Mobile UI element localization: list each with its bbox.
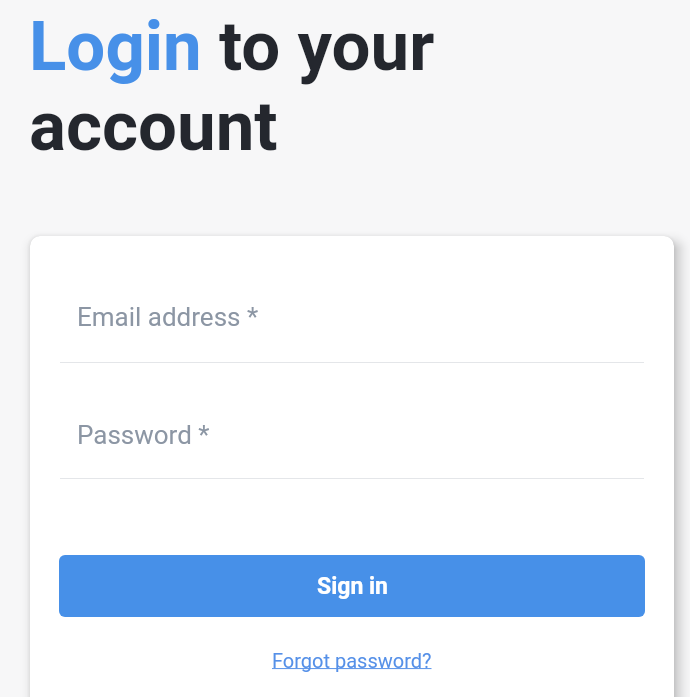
button[interactable]: Forgot password?: [266, 645, 438, 676]
staticText: Email address *: [77, 302, 259, 332]
button[interactable]: Sign in: [59, 555, 645, 617]
staticText: Sign in: [317, 573, 388, 600]
staticText: Forgot password?: [272, 649, 432, 672]
button[interactable]: Email address *: [60, 296, 644, 363]
staticText: Login to your account: [29, 6, 435, 167]
button[interactable]: Password *: [60, 412, 644, 479]
staticText: Password *: [77, 420, 210, 450]
